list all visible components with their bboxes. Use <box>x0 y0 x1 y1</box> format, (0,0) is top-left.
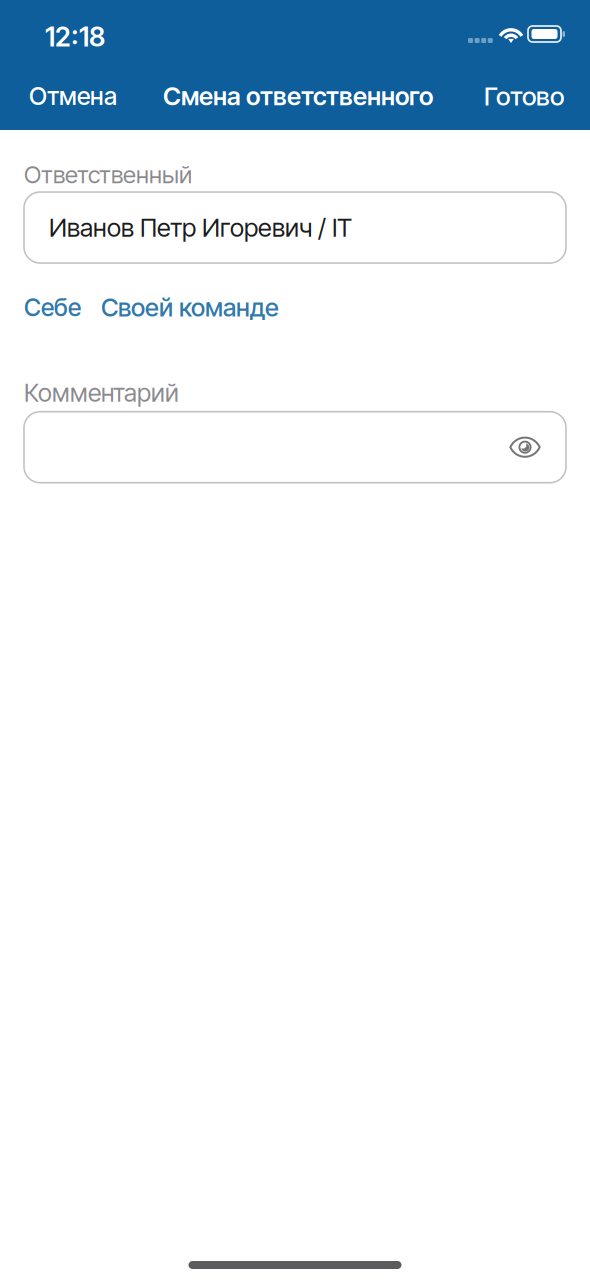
staticText: Своей команде <box>101 292 279 322</box>
button[interactable]: Себе <box>24 287 81 327</box>
staticText: Отмена <box>29 81 117 111</box>
button[interactable]: Отмена <box>0 65 146 127</box>
staticText: Смена ответственного <box>163 81 433 111</box>
staticText: Готово <box>484 80 564 112</box>
staticText: Комментарий <box>24 377 179 408</box>
staticText: 12:18 <box>45 21 105 53</box>
staticText: Иванов Петр Игоревич / IT <box>49 212 352 243</box>
button[interactable]: Показать комментарий <box>502 426 548 468</box>
staticText: Себе <box>24 292 81 322</box>
staticText: Ответственный <box>24 160 192 189</box>
button[interactable]: Готово <box>458 64 590 128</box>
button[interactable]: Своей команде <box>101 287 279 327</box>
